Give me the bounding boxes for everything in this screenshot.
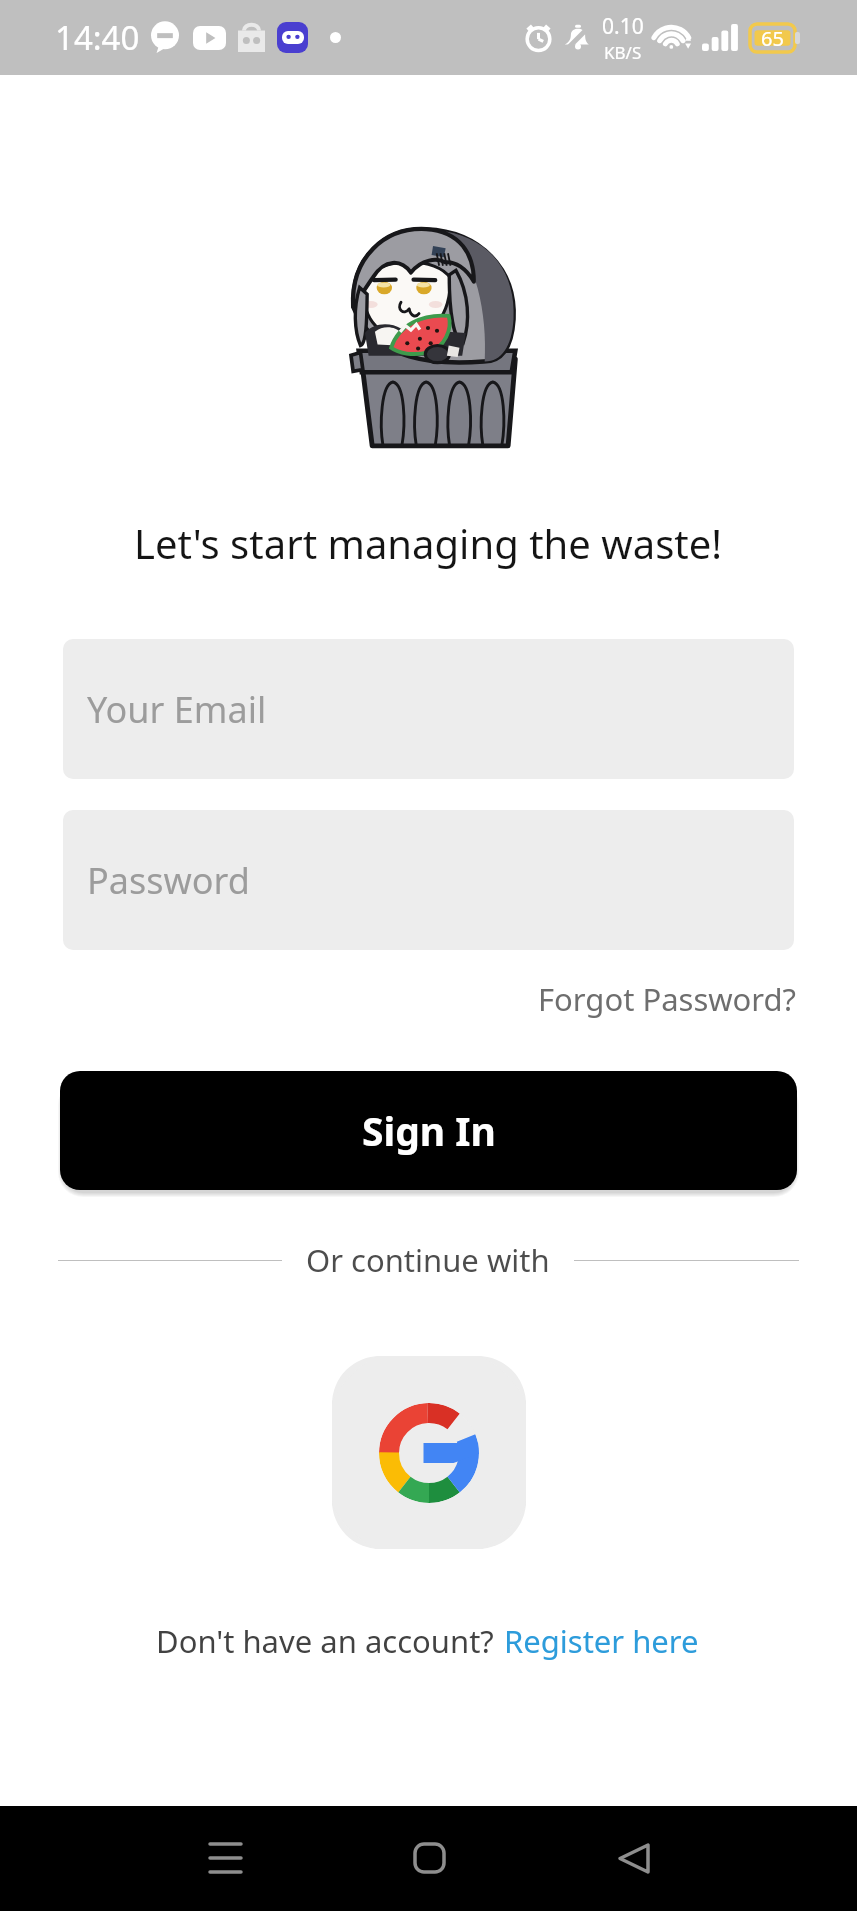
staticText: Let's start managing the waste!: [134, 516, 723, 570]
staticText: Register here: [504, 1620, 699, 1662]
staticText: Don't have an account?: [156, 1620, 502, 1662]
button[interactable]: Password: [63, 810, 794, 950]
staticText: Forgot Password?: [538, 978, 797, 1020]
button[interactable]: Forgot Password?: [534, 970, 801, 1028]
button[interactable]: Sign In: [60, 1071, 797, 1190]
staticText: Or continue with: [306, 1239, 550, 1281]
button[interactable]: Back: [589, 1813, 679, 1903]
staticText: Password: [87, 856, 250, 905]
button[interactable]: Register here: [502, 1614, 701, 1668]
staticText: Your Email: [87, 685, 267, 734]
staticText: 65: [761, 25, 784, 52]
staticText: 0.10: [602, 12, 644, 41]
staticText: KB/S: [604, 41, 642, 64]
button[interactable]: Home: [384, 1813, 474, 1903]
button[interactable]: Recent apps: [180, 1813, 270, 1903]
button[interactable]: Your Email: [63, 639, 794, 779]
staticText: Sign In: [362, 1104, 496, 1157]
button[interactable]: Sign in with Google: [332, 1356, 526, 1549]
staticText: 14:40: [55, 15, 140, 60]
